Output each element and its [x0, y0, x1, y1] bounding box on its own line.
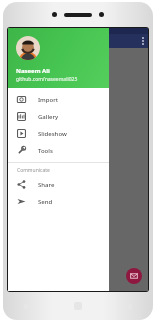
button[interactable]: Gallery [8, 108, 109, 125]
button[interactable]: More options [138, 35, 148, 47]
button[interactable]: Compose [126, 268, 142, 284]
button[interactable]: Send [8, 193, 109, 210]
staticText: Tools [38, 147, 53, 155]
staticText: Import [38, 96, 59, 104]
staticText: Gallery [38, 113, 59, 121]
button[interactable]: Slideshow [8, 125, 109, 142]
staticText: github.com/naseemali025 [16, 76, 78, 83]
button[interactable]: Naseem Ali [8, 28, 109, 88]
staticText: Share [38, 181, 55, 189]
staticText: Naseem Ali [16, 67, 50, 75]
button[interactable]: Import [8, 91, 109, 108]
button[interactable]: Share [8, 176, 109, 193]
button[interactable]: Tools [8, 142, 109, 159]
staticText: Slideshow [38, 130, 67, 138]
staticText: Send [38, 198, 53, 206]
staticText: Communicate [17, 167, 50, 174]
